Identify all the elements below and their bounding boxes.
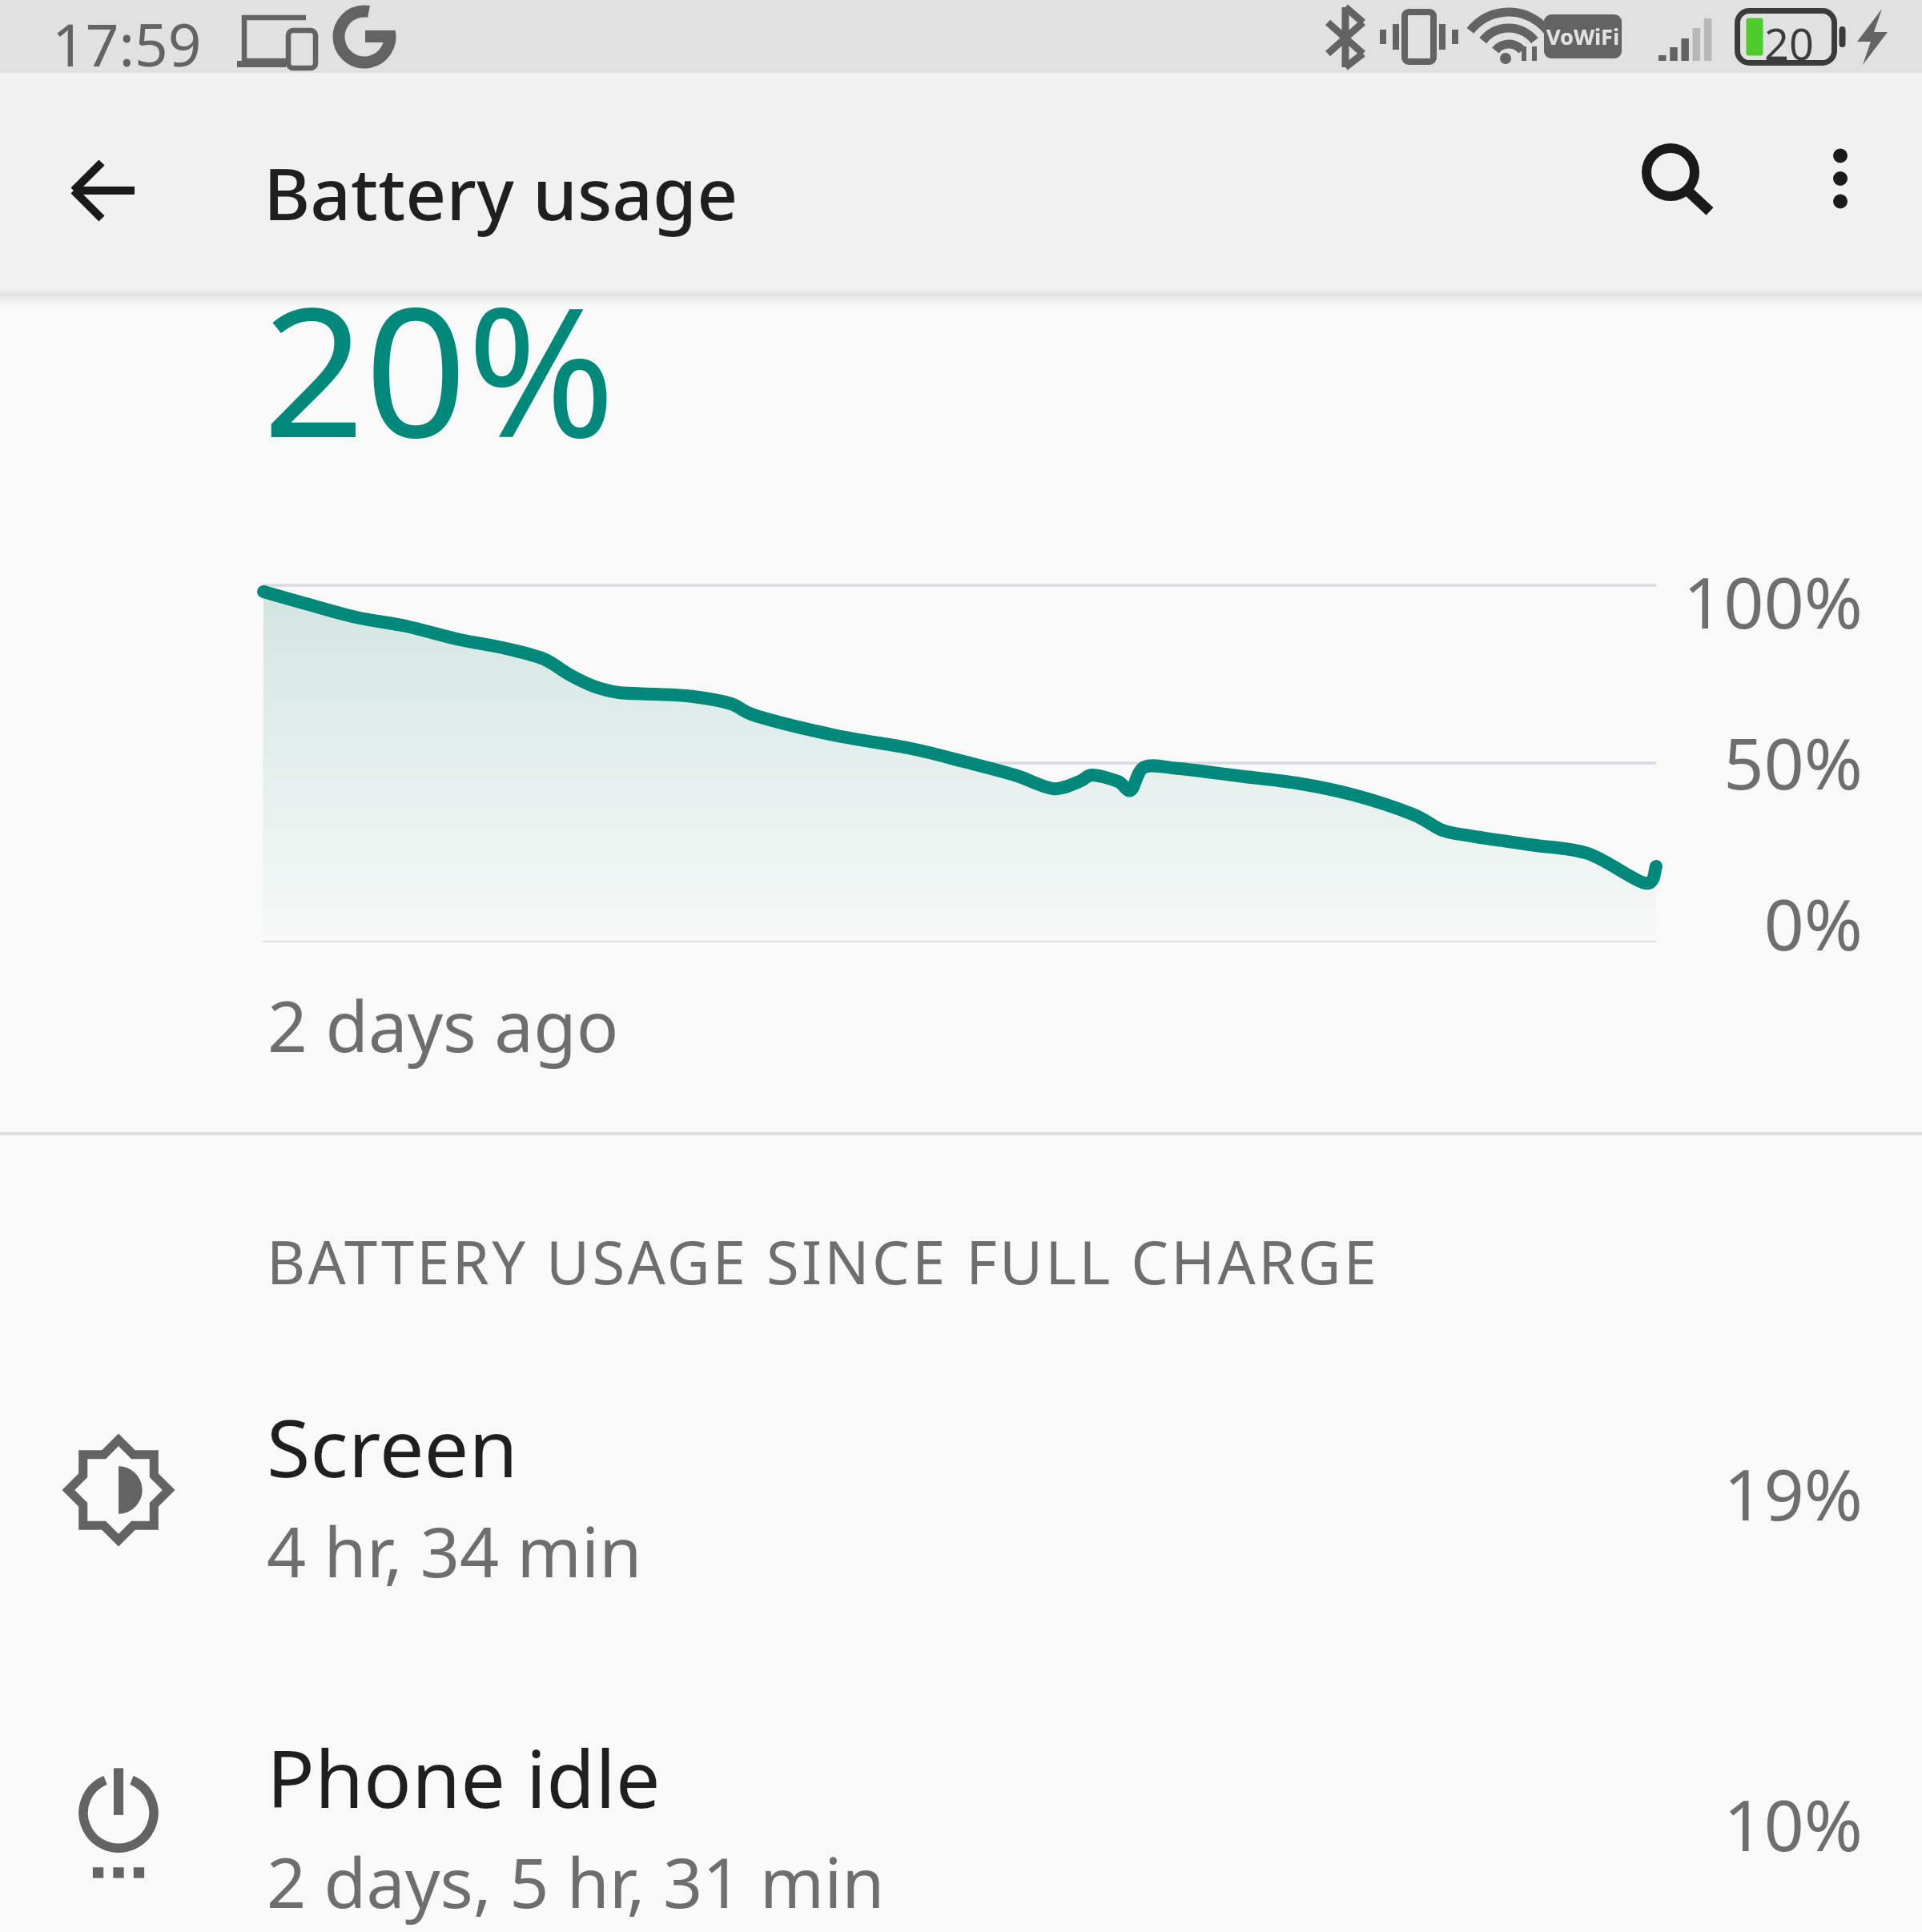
staticText: 19% (1522, 1445, 1863, 1541)
staticText: Screen (267, 1392, 518, 1500)
staticText: 4 hr, 34 min (267, 1504, 642, 1597)
staticText: Battery usage (263, 144, 738, 241)
staticText: 10% (1522, 1776, 1863, 1872)
staticText: 50% (1522, 714, 1863, 810)
button[interactable]: Navigate up (51, 138, 157, 243)
button[interactable]: Screen (0, 1361, 1922, 1665)
staticText: 20 (1764, 14, 1814, 73)
staticText: 0% (1522, 875, 1863, 971)
staticText: 17:59 (52, 4, 202, 77)
button[interactable]: Search (1622, 126, 1728, 231)
staticText: 2 days, 5 hr, 31 min (267, 1834, 885, 1928)
staticText: Phone idle (267, 1723, 661, 1831)
button[interactable]: Phone idle (0, 1692, 1922, 1932)
staticText: 20% (263, 296, 616, 490)
staticText: 100% (1522, 553, 1863, 649)
button[interactable]: More options (1787, 126, 1893, 231)
staticText: 2 days ago (267, 978, 619, 1072)
staticText: VoWiFi (1546, 22, 1619, 51)
staticText: BATTERY USAGE SINCE FULL CHARGE (267, 1221, 1380, 1302)
